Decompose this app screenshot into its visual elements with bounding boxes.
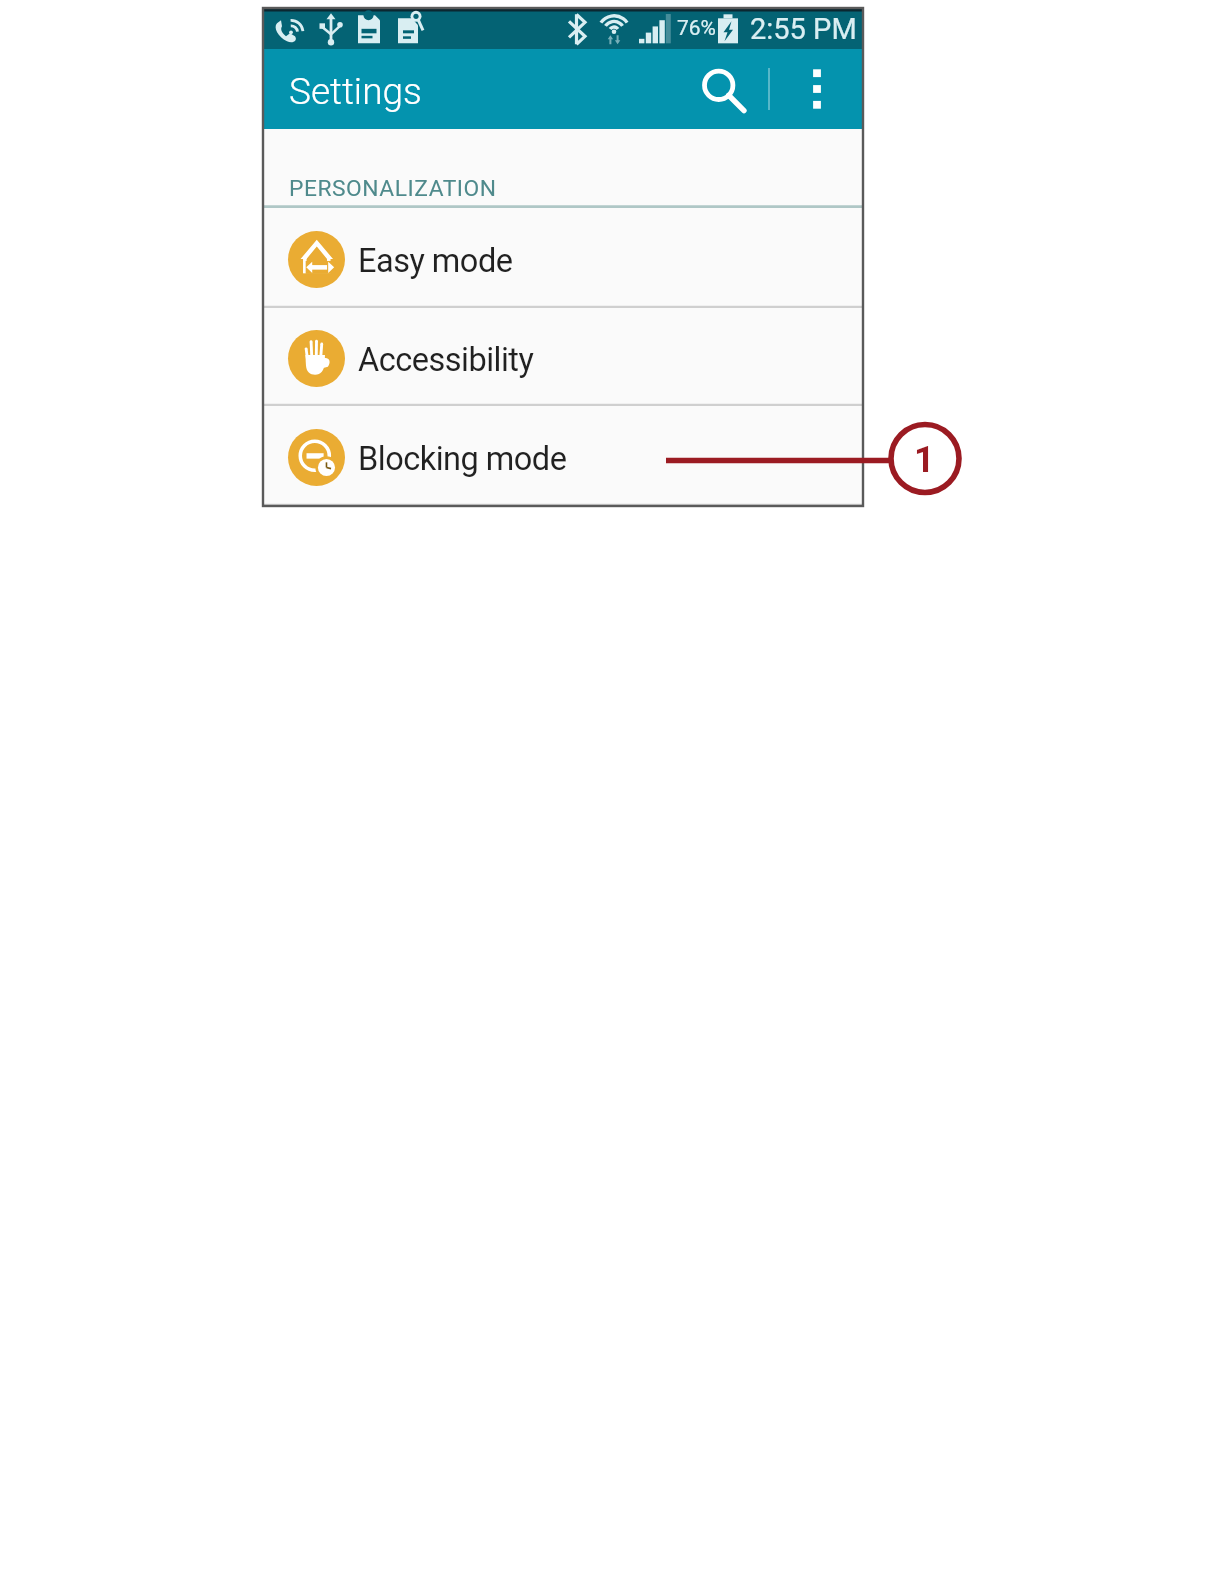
staticText: Settings [289,70,422,113]
staticText: 2:55 PM [750,12,857,46]
staticText: Blocking mode [358,440,567,478]
staticText: Accessibility [358,341,534,379]
button[interactable]: Blocking mode [263,406,863,506]
button[interactable]: Accessibility [263,308,863,406]
staticText: Easy mode [358,242,513,280]
button[interactable]: More options [783,55,851,123]
button[interactable]: Search [690,55,758,123]
staticText: PERSONALIZATION [289,175,497,202]
staticText: 76% [677,16,716,41]
button[interactable]: Easy mode [263,208,863,308]
staticText: 1 [914,439,935,481]
